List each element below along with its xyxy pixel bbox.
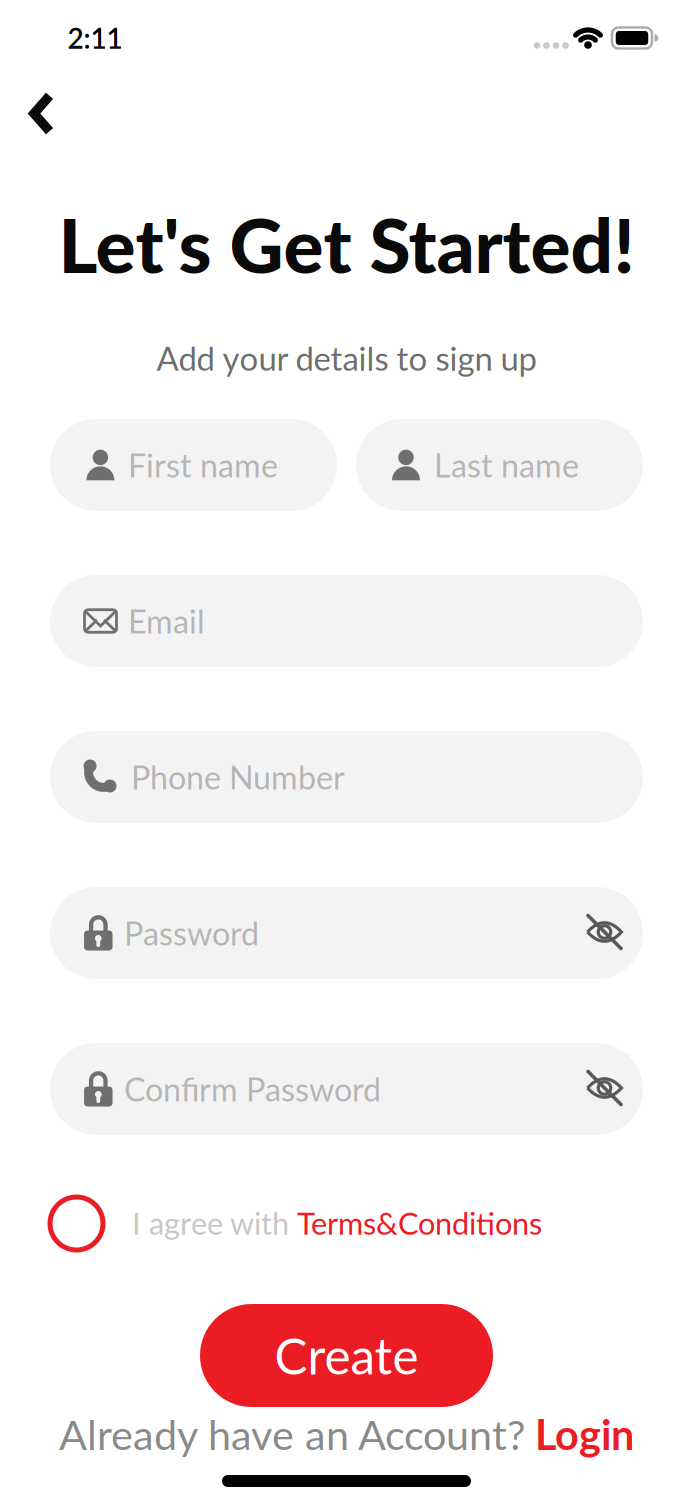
button[interactable]: Show password (576, 1060, 632, 1116)
staticText: 2:11 (67, 21, 122, 55)
staticText: Confirm Password (124, 1070, 381, 1108)
button[interactable]: I agree with Terms & Conditions (50, 1197, 103, 1250)
staticText: Login (535, 1409, 634, 1459)
staticText: First name (128, 446, 278, 484)
button[interactable]: Show password (576, 904, 632, 960)
button[interactable]: Create (200, 1304, 493, 1407)
staticText: Let's Get Started! (58, 199, 634, 289)
staticText: Last name (434, 446, 579, 484)
button[interactable]: Login (535, 1409, 634, 1459)
button[interactable]: Back (9, 83, 70, 144)
staticText: Already have an Account? (59, 1409, 525, 1459)
staticText: Email (128, 602, 205, 640)
button[interactable]: Terms&Conditions (297, 1205, 542, 1241)
staticText: Terms&Conditions (297, 1205, 542, 1241)
staticText: Phone Number (131, 758, 345, 796)
staticText: Create (274, 1326, 418, 1385)
staticText: Add your details to sign up (156, 338, 536, 378)
staticText: Password (124, 914, 259, 952)
staticText: I agree with (132, 1205, 289, 1241)
